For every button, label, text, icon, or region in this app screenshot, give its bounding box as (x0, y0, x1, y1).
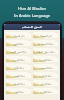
staticText: دعاء لبس الثوب (10, 50, 27, 53)
staticText: دعاء الركوب (39, 74, 52, 77)
staticText: ذكر الصباح (13, 34, 25, 37)
staticText: دعاء الوضوء (39, 58, 52, 61)
staticText: دعاء الكرب (40, 90, 52, 93)
button[interactable]: دعاء الرياح (33, 80, 58, 86)
staticText: دعاء الهم (14, 90, 24, 93)
staticText: دعاء الاستيقاظ (38, 42, 54, 45)
button[interactable]: دعاء الوضوء (33, 56, 58, 62)
staticText: دعاء المطر (13, 82, 25, 85)
staticText: دعاء الأذان (13, 66, 24, 69)
staticText: In Arabic Language (5, 13, 59, 18)
button[interactable]: دعاء الهم (6, 88, 31, 94)
staticText: ذكر المساء (40, 34, 52, 37)
button[interactable]: دعاء الاستيقاظ (33, 40, 58, 46)
button[interactable]: دعاء النوم (6, 40, 31, 46)
button[interactable]: دعاء المطر (6, 80, 31, 86)
staticText: حصن المسلم (22, 25, 42, 29)
staticText: دعاء الرياح (40, 82, 52, 85)
staticText: Hisn Al Muslim (5, 6, 59, 11)
staticText: دعاء المسجد (39, 66, 53, 69)
staticText: دعاء الخروج (12, 58, 25, 61)
staticText: دعاء السفر (13, 74, 25, 77)
button[interactable]: ذكر الصباح (6, 32, 31, 38)
button[interactable]: دعاء الكرب (33, 88, 58, 94)
button[interactable]: دعاء الخروج (6, 56, 31, 62)
button[interactable]: App title bar (4, 24, 60, 30)
button[interactable]: دعاء الركوب (33, 72, 58, 78)
staticText: دعاء دخول الخلاء (37, 50, 55, 53)
button[interactable]: دعاء الأذان (6, 64, 31, 70)
button[interactable]: دعاء دخول الخلاء (33, 48, 58, 54)
button[interactable]: ذكر المساء (33, 32, 58, 38)
button[interactable]: دعاء لبس الثوب (6, 48, 31, 54)
button[interactable]: دعاء السفر (6, 72, 31, 78)
button[interactable]: دعاء المسجد (33, 64, 58, 70)
staticText: دعاء النوم (13, 42, 24, 45)
